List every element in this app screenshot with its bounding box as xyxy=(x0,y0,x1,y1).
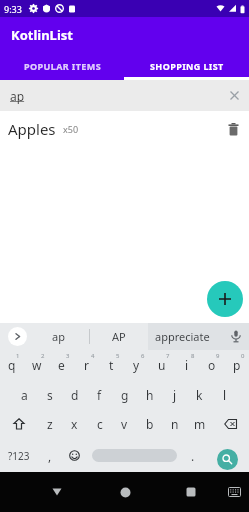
button[interactable]: . xyxy=(180,439,205,472)
staticText: t xyxy=(109,357,114,373)
button[interactable] xyxy=(0,409,37,439)
staticText: 0 xyxy=(241,352,245,360)
button[interactable]: l xyxy=(212,380,237,409)
staticText: y xyxy=(133,357,140,373)
staticText: 6 xyxy=(141,352,145,360)
button[interactable]: d xyxy=(62,380,87,409)
button[interactable]: ?123 xyxy=(0,439,37,472)
staticText: SHOPPING LIST xyxy=(150,60,224,72)
button[interactable] xyxy=(8,327,27,346)
staticText: g xyxy=(121,387,129,403)
button[interactable] xyxy=(207,281,243,317)
staticText: i xyxy=(185,357,189,373)
button[interactable]: Apples xyxy=(0,111,249,147)
button[interactable]: a xyxy=(12,380,37,409)
staticText: d xyxy=(71,387,79,403)
button[interactable]: v xyxy=(112,409,137,439)
button[interactable]: r xyxy=(74,350,99,380)
button[interactable] xyxy=(87,439,180,472)
button[interactable]: y xyxy=(124,350,149,380)
button[interactable]: x xyxy=(62,409,87,439)
staticText: KotlinList xyxy=(11,26,73,44)
button[interactable] xyxy=(228,487,241,497)
staticText: 9:33 xyxy=(4,3,22,15)
staticText: x50 xyxy=(63,123,79,135)
staticText: w xyxy=(32,357,42,373)
button[interactable]: p xyxy=(224,350,249,380)
staticText: s xyxy=(47,387,53,403)
staticText: 1 xyxy=(16,352,20,360)
staticText: m xyxy=(194,416,206,432)
button[interactable]: f xyxy=(87,380,112,409)
button[interactable] xyxy=(186,487,196,497)
button[interactable]: z xyxy=(37,409,62,439)
staticText: 8 xyxy=(191,352,195,360)
button[interactable]: , xyxy=(37,439,62,472)
staticText: l xyxy=(223,387,227,403)
button[interactable] xyxy=(205,439,249,472)
staticText: 7 xyxy=(166,352,170,360)
staticText: POPULAR ITEMS xyxy=(24,60,101,72)
button[interactable]: b xyxy=(137,409,162,439)
staticText: a xyxy=(21,387,28,403)
button[interactable]: appreciate xyxy=(155,329,210,344)
button[interactable]: AP xyxy=(112,329,126,344)
button[interactable]: q xyxy=(0,350,24,380)
staticText: , xyxy=(48,448,52,464)
button[interactable]: w xyxy=(24,350,49,380)
staticText: b xyxy=(146,416,154,432)
button[interactable]: k xyxy=(187,380,212,409)
button[interactable]: m xyxy=(187,409,212,439)
button[interactable]: s xyxy=(37,380,62,409)
button[interactable]: u xyxy=(149,350,174,380)
button[interactable]: c xyxy=(87,409,112,439)
staticText: v xyxy=(121,416,128,432)
button[interactable] xyxy=(230,91,239,100)
staticText: j xyxy=(173,387,177,403)
staticText: r xyxy=(84,357,89,373)
button[interactable]: POPULAR ITEMS xyxy=(0,52,124,80)
button[interactable]: ap xyxy=(52,329,65,344)
staticText: u xyxy=(158,357,166,373)
staticText: . xyxy=(191,448,195,464)
button[interactable]: e xyxy=(49,350,74,380)
button[interactable] xyxy=(62,439,87,472)
staticText: 4 xyxy=(91,352,95,360)
staticText: o xyxy=(208,357,216,373)
button[interactable]: h xyxy=(137,380,162,409)
button[interactable] xyxy=(231,330,241,343)
staticText: c xyxy=(97,416,103,432)
staticText: 2 xyxy=(41,352,45,360)
staticText: h xyxy=(146,387,154,403)
button[interactable]: g xyxy=(112,380,137,409)
staticText: e xyxy=(58,357,65,373)
staticText: p xyxy=(233,357,241,373)
staticText: k xyxy=(196,387,203,403)
staticText: ap xyxy=(10,88,25,104)
button[interactable] xyxy=(228,123,239,136)
button[interactable]: j xyxy=(162,380,187,409)
staticText: 9 xyxy=(216,352,220,360)
button[interactable] xyxy=(212,409,249,439)
staticText: 3 xyxy=(66,352,70,360)
staticText: f xyxy=(97,387,102,403)
button[interactable]: o xyxy=(199,350,224,380)
staticText: z xyxy=(47,416,53,432)
staticText: q xyxy=(8,357,16,373)
staticText: 5 xyxy=(116,352,120,360)
button[interactable]: n xyxy=(162,409,187,439)
button[interactable]: t xyxy=(99,350,124,380)
staticText: ?123 xyxy=(8,449,30,463)
staticText: n xyxy=(171,416,179,432)
button[interactable] xyxy=(120,487,131,498)
button[interactable]: i xyxy=(174,350,199,380)
button[interactable]: SHOPPING LIST xyxy=(124,52,249,80)
button[interactable] xyxy=(52,488,62,496)
staticText: x xyxy=(71,416,78,432)
staticText: Apples xyxy=(8,119,56,139)
